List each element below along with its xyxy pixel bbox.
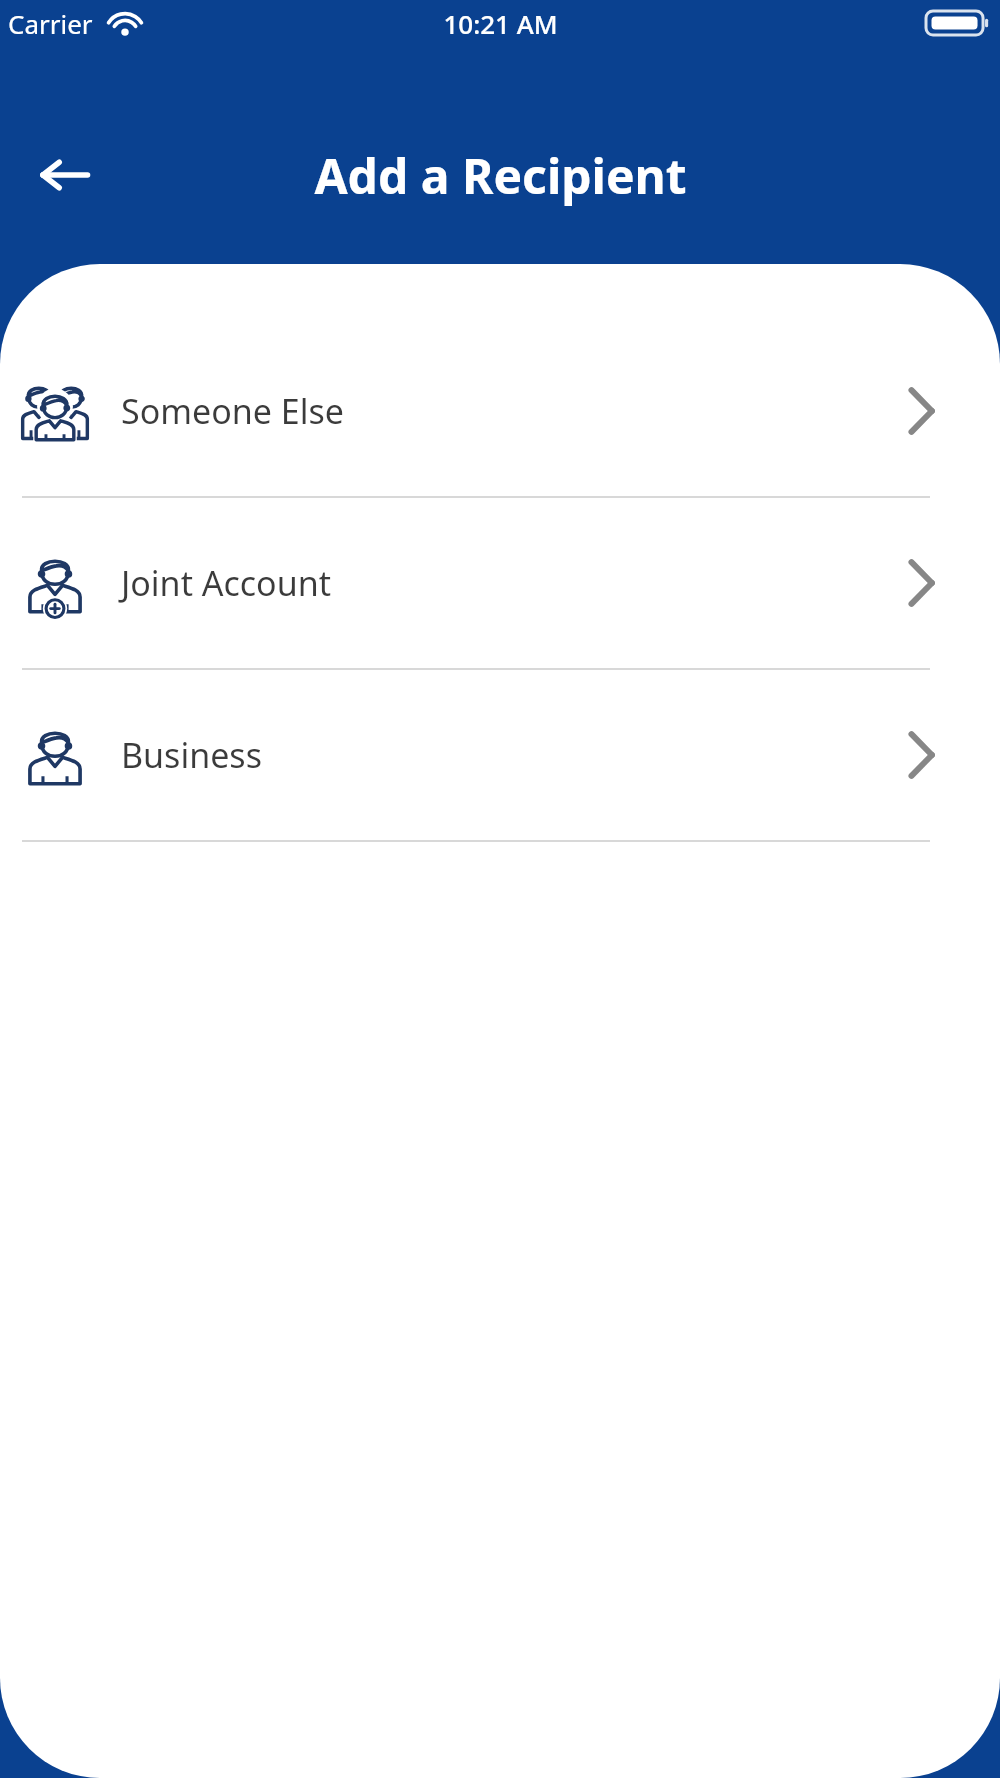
button[interactable]: Joint Account bbox=[0, 498, 1000, 668]
staticText: Someone Else bbox=[121, 388, 344, 434]
button[interactable]: Back bbox=[28, 138, 102, 212]
staticText: Business bbox=[121, 732, 262, 778]
button[interactable]: Someone Else bbox=[0, 326, 1000, 496]
staticText: Carrier bbox=[8, 6, 93, 41]
staticText: 10:21 AM bbox=[443, 6, 558, 41]
button[interactable]: Business bbox=[0, 670, 1000, 840]
staticText: Joint Account bbox=[121, 560, 331, 606]
staticText: Add a Recipient bbox=[314, 143, 687, 208]
